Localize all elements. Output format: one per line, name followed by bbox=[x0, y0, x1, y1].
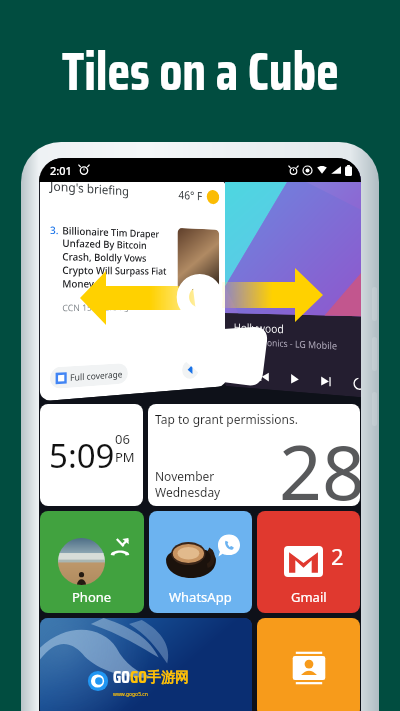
staticText: Hollywood bbox=[234, 319, 284, 336]
button[interactable] bbox=[40, 618, 252, 711]
staticText: 5:09 bbox=[49, 433, 115, 478]
staticText: Wednesday bbox=[155, 484, 221, 500]
button[interactable]: prev bbox=[258, 369, 271, 385]
staticText: LG Electronics - LG Mobile bbox=[234, 334, 337, 352]
button[interactable]: 28 bbox=[148, 404, 360, 506]
staticText: 2 bbox=[331, 541, 344, 571]
button[interactable]: Full coverage bbox=[56, 363, 123, 389]
staticText: 3. bbox=[50, 222, 59, 236]
staticText: Tiles on a Cube bbox=[62, 30, 339, 113]
staticText: 28 bbox=[279, 420, 360, 506]
button[interactable]: Hollywood bbox=[225, 168, 361, 398]
staticText: www.gogo5.cn bbox=[113, 691, 148, 698]
other: WhatsApp bbox=[217, 533, 241, 557]
staticText: 手游网 bbox=[147, 669, 189, 687]
staticText: Tap to grant permissions. bbox=[155, 411, 299, 427]
staticText: Phone bbox=[72, 588, 112, 606]
staticText: WhatsApp bbox=[169, 588, 232, 606]
staticText: GO bbox=[130, 664, 147, 691]
staticText: 46° F bbox=[178, 186, 202, 203]
staticText: Full coverage bbox=[70, 367, 123, 383]
button[interactable]: 2 bbox=[257, 511, 360, 613]
button[interactable]: repeat bbox=[352, 375, 361, 392]
staticText: Jong's briefing bbox=[50, 177, 130, 199]
staticText: November bbox=[155, 468, 215, 484]
staticText: 06 bbox=[115, 430, 130, 448]
button[interactable]: next bbox=[319, 373, 333, 389]
button[interactable]: WhatsApp bbox=[149, 511, 252, 613]
staticText: CCN 15 hours ago bbox=[62, 300, 134, 314]
button[interactable]: Previous bbox=[182, 360, 199, 379]
button[interactable]: Missed call bbox=[40, 511, 144, 613]
staticText: Billionaire Tim Draper Unfazed By Bitcoi… bbox=[62, 223, 174, 291]
staticText: 2:01 bbox=[50, 163, 72, 178]
staticText: GO bbox=[113, 664, 130, 691]
button[interactable]: Jong's briefing bbox=[40, 164, 227, 401]
other: Missed call bbox=[110, 537, 130, 557]
button[interactable]: 5:09 bbox=[40, 404, 143, 506]
staticText: Gmail bbox=[291, 588, 327, 606]
staticText: PM bbox=[115, 448, 135, 466]
button[interactable] bbox=[257, 618, 360, 711]
button[interactable]: play bbox=[288, 371, 301, 387]
